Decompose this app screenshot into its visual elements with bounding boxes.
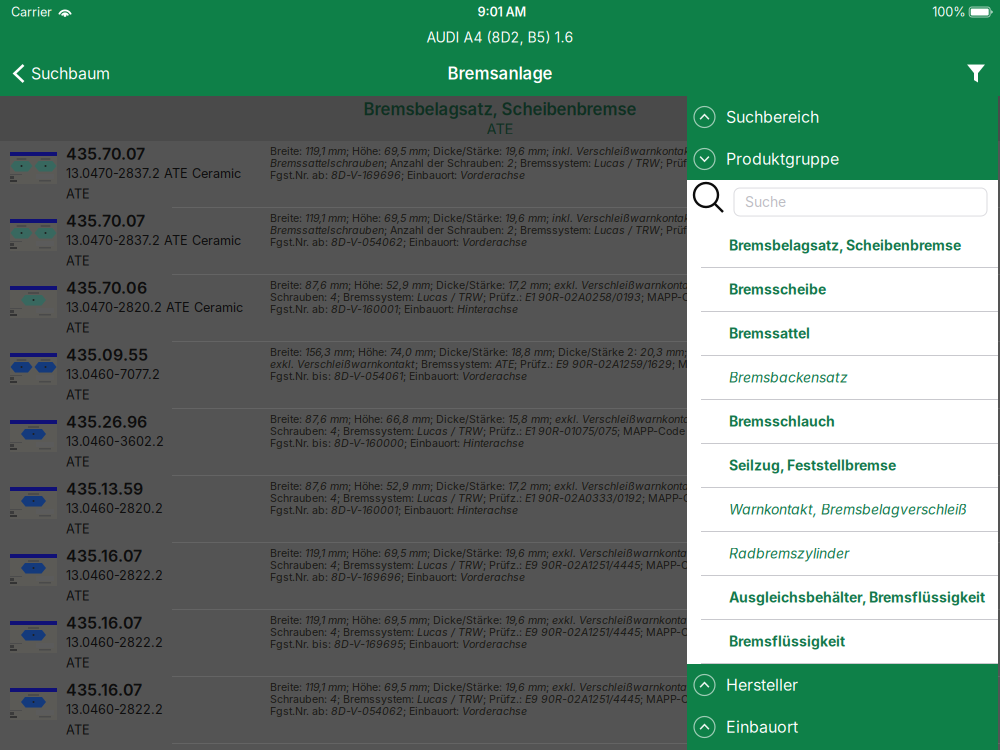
staticText: AUDI A4 (8D2, B5) 1.6 <box>426 29 573 46</box>
staticText: Warnkontakt, Bremsbelagverschleiß <box>729 501 967 518</box>
button[interactable]: Warnkontakt, Bremsbelagverschleiß <box>687 488 998 532</box>
staticText: Schrauben: 4; Bremssystem: Lucas / TRW; … <box>270 693 717 705</box>
button[interactable]: Produktgruppe <box>687 138 998 180</box>
button[interactable]: Bremsflüssigkeit <box>687 620 998 664</box>
staticText: Breite: 87,6 mm; Höhe: 52,9 mm; Dicke/St… <box>270 279 714 291</box>
button[interactable]: Bremssattel <box>687 312 998 356</box>
staticText: Suchbaum <box>31 64 110 83</box>
staticText: Bremssattelschrauben; Anzahl der Schraub… <box>270 224 715 236</box>
staticText: Ausgleichsbehälter, Bremsflüssigkeit <box>729 589 985 606</box>
staticText: 13.0460-2822.2 <box>66 568 163 583</box>
button[interactable]: Bremsbelagsatz, Scheibenbremse <box>687 224 998 268</box>
button[interactable]: 435.16.07 <box>0 677 1000 744</box>
staticText: Breite: 87,6 mm; Höhe: 52,9 mm; Dicke/St… <box>270 480 714 492</box>
button[interactable]: Einbauort <box>687 706 998 748</box>
staticText: 435.09.55 <box>66 345 148 365</box>
staticText: 13.0470-2837.2 ATE Ceramic <box>66 166 241 181</box>
button[interactable]: Suchbaum <box>0 51 120 96</box>
staticText: Radbremszylinder <box>729 545 849 562</box>
staticText: Breite: 156,3 mm; Höhe: 74,0 mm; Dicke/S… <box>270 346 711 358</box>
staticText: 100% <box>932 4 965 20</box>
button[interactable]: Seilzug, Feststellbremse <box>687 444 998 488</box>
button[interactable]: 435.16.07 <box>0 610 1000 677</box>
staticText: Fgst.Nr. ab: 8D-V-054062; Einbauort: Vor… <box>270 236 527 248</box>
button[interactable]: 435.09.55 <box>0 342 1000 409</box>
staticText: ATE <box>66 588 90 604</box>
staticText: Schrauben: 4; Bremssystem: Lucas / TRW; … <box>270 291 718 303</box>
staticText: Breite: 87,6 mm; Höhe: 66,8 mm; Dicke/St… <box>270 413 715 425</box>
staticText: Breite: 119,1 mm; Höhe: 69,5 mm; Dicke/S… <box>270 212 711 224</box>
button[interactable]: Bremsschlauch <box>687 400 998 444</box>
staticText: Schrauben: 4; Bremssystem: Lucas / TRW; … <box>270 425 716 437</box>
staticText: Bremsflüssigkeit <box>729 633 845 650</box>
staticText: 435.70.07 <box>66 211 145 231</box>
staticText: Einbauort <box>726 717 798 737</box>
staticText: ATE <box>66 521 90 537</box>
staticText: Fgst.Nr. bis: 8D-V-054061; Einbauort: Vo… <box>270 370 527 382</box>
staticText: 435.16.07 <box>66 613 142 633</box>
staticText: Fgst.Nr. bis: 8D-V-169695; Einbauort: Vo… <box>270 638 527 650</box>
staticText: Fgst.Nr. ab: 8D-V-169696; Einbauort: Vor… <box>270 169 525 181</box>
staticText: Bremsscheibe <box>729 281 826 298</box>
staticText: 13.0460-2820.2 <box>66 501 163 516</box>
staticText: Fgst.Nr. ab: 8D-V-169696; Einbauort: Vor… <box>270 571 525 583</box>
staticText: ATE <box>66 722 90 738</box>
staticText: Bremsanlage <box>447 63 552 84</box>
staticText: Bremssattel <box>729 325 810 342</box>
staticText: 13.0470-2837.2 ATE Ceramic <box>66 233 241 248</box>
staticText: 435.16.07 <box>66 546 142 566</box>
staticText: ATE <box>66 454 90 470</box>
staticText: 13.0460-7077.2 <box>66 367 160 382</box>
staticText: 13.0470-2820.2 ATE Ceramic <box>66 300 243 315</box>
staticText: Carrier <box>11 4 52 20</box>
staticText: Hersteller <box>726 675 798 695</box>
button[interactable]: Radbremszylinder <box>687 532 998 576</box>
button[interactable]: 435.70.07 <box>0 141 1000 208</box>
staticText: Breite: 119,1 mm; Höhe: 69,5 mm; Dicke/S… <box>270 681 712 693</box>
button[interactable]: Hersteller <box>687 664 998 706</box>
staticText: Schrauben: 4; Bremssystem: Lucas / TRW; … <box>270 559 717 571</box>
staticText: Suche <box>745 193 786 210</box>
staticText: ATE <box>66 655 90 671</box>
staticText: Bremssattelschrauben; Anzahl der Schraub… <box>270 157 715 169</box>
staticText: 435.13.59 <box>66 479 143 499</box>
staticText: 13.0460-2822.2 <box>66 702 163 717</box>
button[interactable]: Filter <box>951 51 1000 96</box>
staticText: Bremsbackensatz <box>729 369 848 386</box>
staticText: 435.26.96 <box>66 412 147 432</box>
staticText: Schrauben: 4; Bremssystem: Lucas / TRW; … <box>270 626 717 638</box>
staticText: Breite: 119,1 mm; Höhe: 69,5 mm; Dicke/S… <box>270 145 711 157</box>
staticText: 9:01 AM <box>478 4 527 20</box>
staticText: 435.70.07 <box>66 144 145 164</box>
staticText: Fgst.Nr. ab: 8D-V-160001; Einbauort: Hin… <box>270 303 518 315</box>
button[interactable]: Ausgleichsbehälter, Bremsflüssigkeit <box>687 576 998 620</box>
staticText: ATE <box>66 253 90 269</box>
staticText: Fgst.Nr. ab: 8D-V-054062; Einbauort: Vor… <box>270 705 527 717</box>
staticText: Breite: 119,1 mm; Höhe: 69,5 mm; Dicke/S… <box>270 614 712 626</box>
staticText: Fgst.Nr. ab: 8D-V-160001; Einbauort: Hin… <box>270 504 518 516</box>
staticText: 13.0460-2822.2 <box>66 635 163 650</box>
button[interactable]: Bremsscheibe <box>687 268 998 312</box>
staticText: Suchbereich <box>726 107 819 127</box>
button[interactable]: 435.26.96 <box>0 409 1000 476</box>
staticText: Bremsschlauch <box>729 413 835 430</box>
button[interactable]: 435.70.07 <box>0 208 1000 275</box>
staticText: 435.16.07 <box>66 680 142 700</box>
button[interactable]: Bremsbackensatz <box>687 356 998 400</box>
staticText: ATE <box>66 186 90 202</box>
staticText: 13.0460-3602.2 <box>66 434 164 449</box>
button[interactable]: 435.16.07 <box>0 543 1000 610</box>
button[interactable]: Suchbereich <box>687 96 998 138</box>
staticText: ATE <box>486 120 513 138</box>
staticText: ATE <box>66 387 90 403</box>
staticText: 435.70.06 <box>66 278 147 298</box>
button[interactable]: 435.70.06 <box>0 275 1000 342</box>
staticText: Bremsbelagsatz, Scheibenbremse <box>729 237 961 254</box>
staticText: Bremsbelagsatz, Scheibenbremse <box>363 99 636 119</box>
staticText: Produktgruppe <box>726 149 839 169</box>
staticText: exkl. Verschleißwarnkontakt; Bremssystem… <box>270 358 721 370</box>
staticText: Fgst.Nr. bis: 8D-V-160000; Einbauort: Hi… <box>270 437 524 449</box>
button[interactable]: 435.13.59 <box>0 476 1000 543</box>
staticText: Seilzug, Feststellbremse <box>729 457 896 474</box>
staticText: ATE <box>66 320 90 336</box>
